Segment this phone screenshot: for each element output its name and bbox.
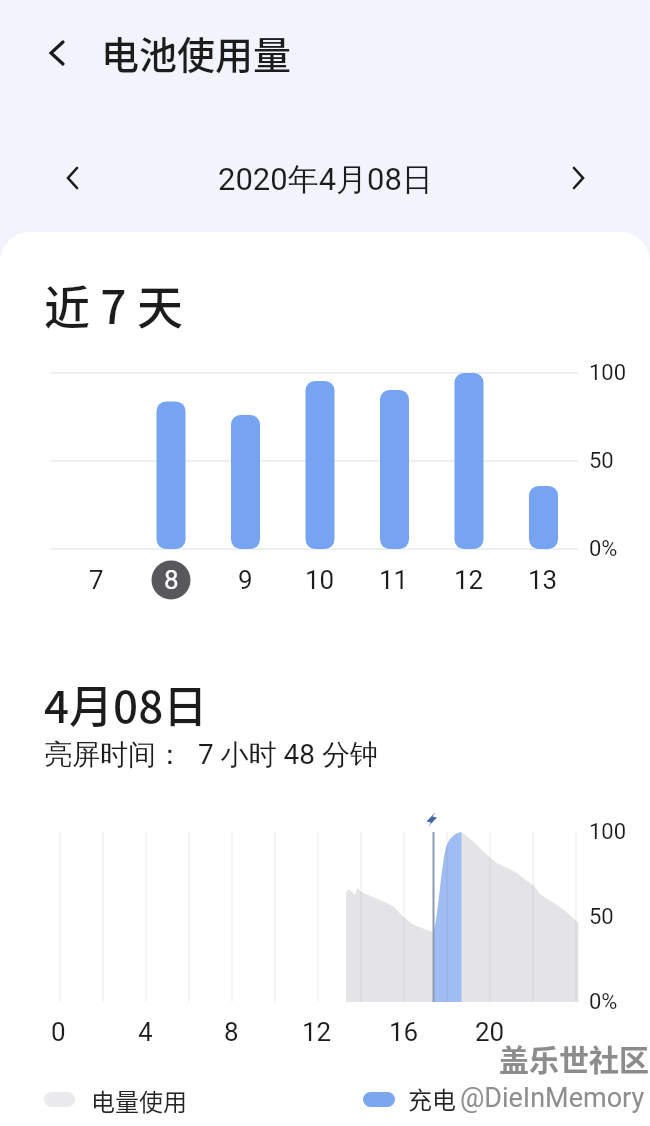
- staticText: @DieInMemory: [460, 1082, 645, 1114]
- button[interactable]: [38, 33, 76, 73]
- staticText: 电量使用: [91, 1083, 187, 1118]
- staticText: 13: [528, 565, 558, 595]
- staticText: 近 7 天: [44, 271, 183, 331]
- button[interactable]: [52, 158, 92, 198]
- staticText: 盖乐世社区: [499, 1036, 649, 1079]
- staticText: 11: [379, 565, 409, 595]
- staticText: 8: [164, 565, 179, 595]
- staticText: 亮屏时间： 7 小时 48 分钟: [44, 737, 378, 772]
- staticText: 100: [589, 819, 627, 845]
- staticText: 50: [589, 448, 614, 474]
- staticText: 0%: [589, 536, 618, 562]
- staticText: 12: [302, 1017, 332, 1047]
- staticText: 10: [305, 565, 335, 595]
- staticText: 0: [51, 1017, 66, 1047]
- button[interactable]: [558, 158, 598, 198]
- staticText: 电池使用量: [101, 25, 292, 80]
- staticText: 8: [224, 1017, 239, 1047]
- staticText: 4月08日: [44, 672, 208, 732]
- staticText: 充电: [408, 1081, 456, 1116]
- staticText: 12: [454, 565, 484, 595]
- staticText: 7: [89, 565, 104, 595]
- button[interactable]: 2020年4月08日: [0, 158, 650, 200]
- staticText: 16: [389, 1017, 419, 1047]
- staticText: 9: [238, 565, 253, 595]
- staticText: 100: [589, 360, 627, 386]
- staticText: 2020年4月08日: [218, 160, 433, 199]
- staticText: 0%: [589, 989, 618, 1015]
- staticText: 4: [138, 1017, 153, 1047]
- staticText: 50: [589, 904, 614, 930]
- staticText: 20: [475, 1017, 505, 1047]
